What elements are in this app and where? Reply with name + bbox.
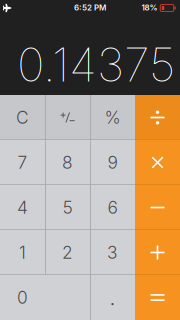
staticText: C [16, 107, 29, 128]
button[interactable]: 0 [0, 275, 90, 320]
staticText: 0 [17, 287, 28, 308]
staticText: 4 [17, 197, 28, 218]
button[interactable]: 5 [45, 185, 90, 230]
staticText: 18% [141, 3, 157, 12]
button[interactable]: 8 [45, 140, 90, 185]
button[interactable]: Plus minus [45, 95, 90, 140]
staticText: 8 [62, 152, 73, 173]
button[interactable]: Minus [135, 185, 180, 230]
staticText: 7 [17, 152, 27, 173]
staticText: 2 [62, 242, 73, 263]
button[interactable]: Multiply [135, 140, 180, 185]
button[interactable]: C [0, 95, 45, 140]
button[interactable]: 3 [90, 230, 135, 275]
button[interactable]: 2 [45, 230, 90, 275]
button[interactable]: 4 [0, 185, 45, 230]
button[interactable]: Equals [135, 275, 180, 320]
button[interactable]: 7 [0, 140, 45, 185]
button[interactable]: . [90, 275, 135, 320]
button[interactable]: Divide [135, 95, 180, 140]
button[interactable]: 1 [0, 230, 45, 275]
button[interactable]: 6 [90, 185, 135, 230]
staticText: 1 [19, 242, 26, 263]
button[interactable]: % [90, 95, 135, 140]
staticText: 3 [107, 242, 118, 263]
staticText: 5 [62, 197, 72, 218]
staticText: % [104, 107, 120, 128]
staticText: 6 [107, 197, 117, 218]
button[interactable]: 9 [90, 140, 135, 185]
staticText: . [109, 285, 115, 310]
staticText: 0.14375 [17, 36, 175, 93]
button[interactable]: Plus [135, 230, 180, 275]
staticText: 6:52 PM [74, 3, 106, 12]
staticText: 9 [107, 152, 117, 173]
